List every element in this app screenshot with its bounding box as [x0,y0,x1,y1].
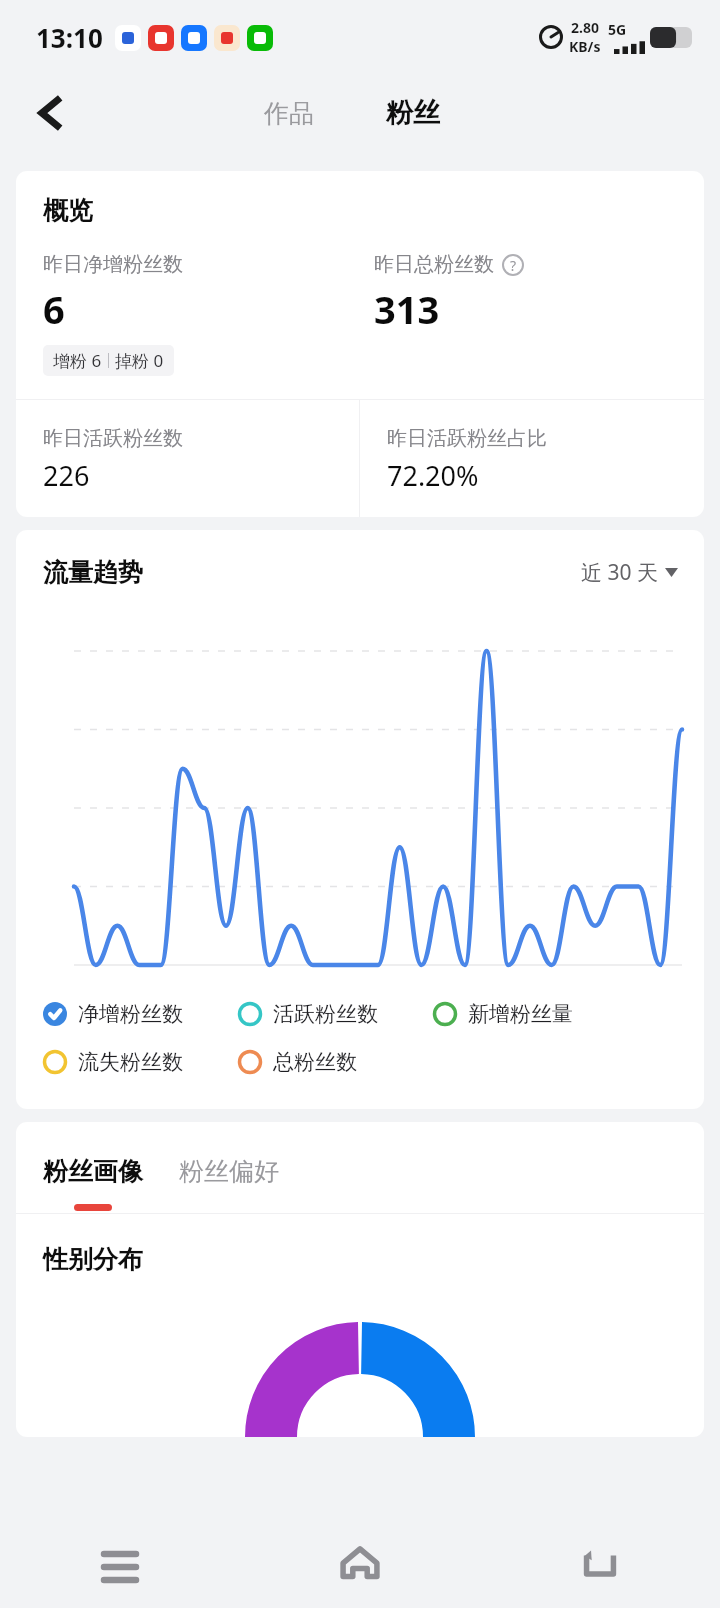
staticText: 近 30 天 [581,558,658,587]
button[interactable]: 作品 [250,90,328,137]
button[interactable]: Back [480,1522,720,1608]
staticText: 掉粉 0 [115,349,164,372]
button[interactable]: 活跃粉丝数 [238,1001,433,1027]
staticText: 流失粉丝数 [78,1049,183,1075]
staticText: 昨日活跃粉丝数 [43,426,183,451]
button[interactable]: Home [240,1522,480,1608]
staticText: 6 [43,283,65,335]
staticText: 226 [43,457,90,494]
staticText: KB/s [569,37,601,56]
button[interactable]: 近 30 天 [577,554,682,591]
staticText: ? [510,256,517,275]
staticText: 2.80 [571,18,599,37]
staticText: 净增粉丝数 [78,1001,183,1027]
staticText: 总粉丝数 [273,1049,357,1075]
button[interactable]: 粉丝画像 [43,1156,143,1187]
button[interactable]: 总粉丝数 [238,1049,433,1075]
staticText: 粉丝画像 [43,1156,143,1187]
button[interactable]: 新增粉丝量 [433,1001,628,1027]
staticText: 5G [608,20,627,39]
button[interactable]: 粉丝 [372,88,454,138]
button[interactable]: 净增粉丝数 [43,1001,238,1027]
staticText: 313 [374,283,440,335]
staticText: 性别分布 [43,1244,143,1275]
staticText: 作品 [264,98,314,129]
staticText: 粉丝 [386,96,440,130]
staticText: 流量趋势 [43,557,143,588]
staticText: 72.20% [387,457,479,494]
staticText: 概览 [43,195,93,226]
button[interactable]: Recents [0,1522,240,1608]
staticText: 增粉 6 [53,349,102,372]
button[interactable]: Back [22,85,78,141]
staticText: 昨日活跃粉丝占比 [387,426,547,451]
staticText: 13:10 [36,20,103,55]
staticText: 昨日净增粉丝数 [43,252,183,277]
staticText: 粉丝偏好 [179,1156,279,1187]
staticText: 新增粉丝量 [468,1001,573,1027]
staticText: 活跃粉丝数 [273,1001,378,1027]
button[interactable]: 流失粉丝数 [43,1049,238,1075]
button[interactable]: 说明 [502,254,524,276]
staticText: 昨日总粉丝数 [374,252,494,277]
button[interactable]: 粉丝偏好 [179,1156,279,1187]
